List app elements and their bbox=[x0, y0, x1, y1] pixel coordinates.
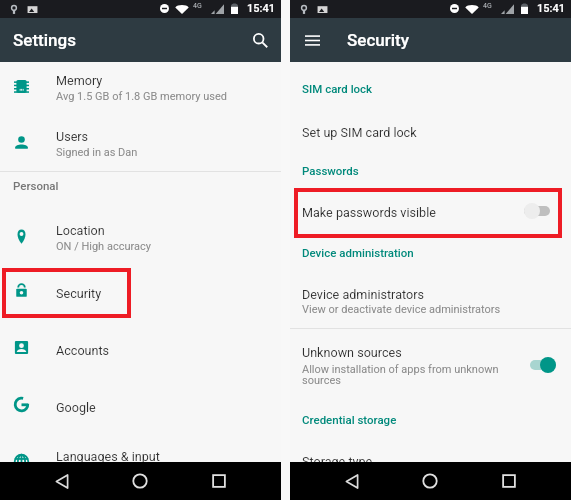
staticText: Device administration bbox=[302, 246, 414, 259]
button[interactable]: Menu bbox=[295, 23, 329, 57]
staticText: 15:41 bbox=[537, 2, 565, 15]
staticText: Google bbox=[56, 400, 96, 415]
staticText: Signed in as Dan bbox=[56, 146, 138, 159]
button[interactable]: Search bbox=[243, 23, 277, 57]
staticText: Device administrators bbox=[302, 287, 424, 302]
staticText: Unknown sources bbox=[302, 345, 402, 360]
button[interactable]: Location bbox=[0, 212, 281, 268]
staticText: Languages & input bbox=[56, 449, 160, 464]
button[interactable]: Google bbox=[0, 380, 281, 436]
staticText: ON / High accuracy bbox=[56, 240, 151, 253]
button[interactable]: Recents bbox=[493, 462, 525, 500]
staticText: Security bbox=[347, 30, 410, 50]
button[interactable]: Security bbox=[0, 266, 281, 322]
staticText: Set up SIM card lock bbox=[302, 125, 417, 140]
staticText: Security bbox=[56, 286, 102, 301]
staticText: Passwords bbox=[302, 164, 359, 177]
staticText: 15:41 bbox=[247, 2, 275, 15]
staticText: sources bbox=[302, 374, 341, 387]
button[interactable]: Home bbox=[414, 462, 446, 500]
staticText: Accounts bbox=[56, 343, 110, 358]
staticText: SIM card lock bbox=[302, 82, 373, 95]
staticText: Make passwords visible bbox=[302, 205, 436, 220]
button[interactable]: Recents bbox=[203, 462, 235, 500]
button[interactable]: Memory bbox=[0, 62, 281, 118]
staticText: View or deactivate device administrators bbox=[302, 303, 501, 316]
staticText: 4G bbox=[483, 2, 492, 10]
staticText: Avg 1.5 GB of 1.8 GB memory used bbox=[56, 90, 227, 103]
staticText: Location bbox=[56, 223, 105, 238]
button[interactable]: Accounts bbox=[0, 323, 281, 379]
button[interactable]: Switch on bbox=[530, 355, 564, 375]
staticText: 4G bbox=[193, 2, 202, 10]
staticText: Storage type bbox=[302, 454, 373, 469]
button[interactable]: Users bbox=[0, 118, 281, 174]
staticText: Settings bbox=[13, 30, 76, 50]
staticText: Allow installation of apps from unknown bbox=[302, 363, 499, 376]
button[interactable]: Languages & input bbox=[0, 429, 281, 485]
staticText: Memory bbox=[56, 73, 103, 88]
button[interactable]: Back bbox=[46, 462, 78, 500]
button[interactable]: Switch off bbox=[524, 201, 558, 221]
button[interactable]: Back bbox=[336, 462, 368, 500]
staticText: Credential storage bbox=[302, 413, 397, 426]
button[interactable]: Home bbox=[124, 462, 156, 500]
staticText: Users bbox=[56, 129, 89, 144]
staticText: Personal bbox=[13, 179, 59, 192]
